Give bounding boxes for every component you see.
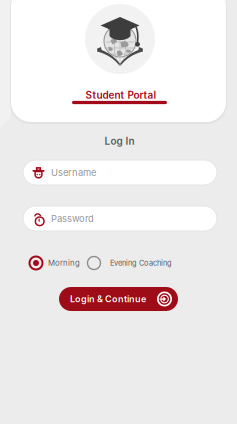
staticText: Student Portal [85, 89, 156, 101]
staticText: Login & Continue [70, 293, 146, 304]
staticText: Evening Coaching [110, 258, 172, 267]
button[interactable]: Login & Continue [59, 287, 178, 311]
staticText: Password [51, 213, 94, 224]
staticText: Username [51, 167, 96, 178]
staticText: Log In [104, 135, 134, 147]
staticText: Morning [48, 258, 80, 268]
button[interactable]: Username [23, 160, 217, 185]
button[interactable]: Password [23, 206, 217, 231]
button[interactable]: Evening Coaching [87, 256, 172, 270]
button[interactable]: Morning [29, 256, 80, 270]
